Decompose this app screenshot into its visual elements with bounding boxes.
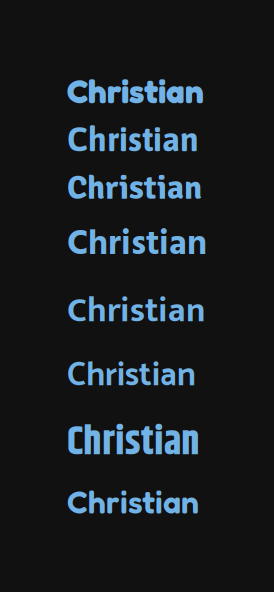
staticText: Christian [67,349,196,403]
staticText: Christian [67,412,200,473]
staticText: Christian [67,217,207,273]
staticText: Christian [67,71,204,111]
staticText: Christian [67,167,202,208]
staticText: Christian [67,482,199,521]
staticText: Christian [67,120,199,158]
staticText: Christian [67,282,206,340]
